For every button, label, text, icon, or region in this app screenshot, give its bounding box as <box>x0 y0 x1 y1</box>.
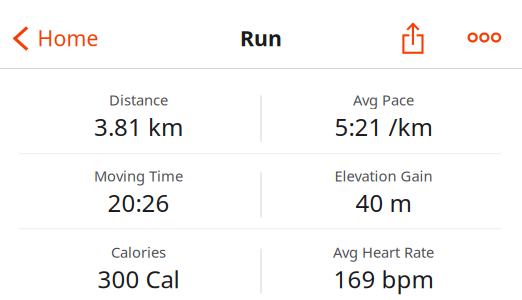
staticText: 3.81 km <box>94 111 183 143</box>
staticText: Distance <box>109 90 168 109</box>
staticText: Moving Time <box>94 166 183 185</box>
staticText: Run <box>240 24 282 52</box>
staticText: 300 Cal <box>97 263 179 295</box>
staticText: Avg Pace <box>353 90 414 109</box>
staticText: Calories <box>111 242 166 262</box>
button[interactable]: Share <box>390 4 457 64</box>
button[interactable]: Home <box>0 4 111 64</box>
staticText: Avg Heart Rate <box>333 242 434 262</box>
staticText: 5:21 /km <box>334 111 432 143</box>
staticText: 169 bpm <box>333 263 433 295</box>
staticText: Elevation Gain <box>334 166 432 185</box>
staticText: 40 m <box>355 187 411 219</box>
staticText: Home <box>38 24 99 52</box>
button[interactable]: More options <box>457 4 522 64</box>
staticText: 20:26 <box>107 187 169 219</box>
